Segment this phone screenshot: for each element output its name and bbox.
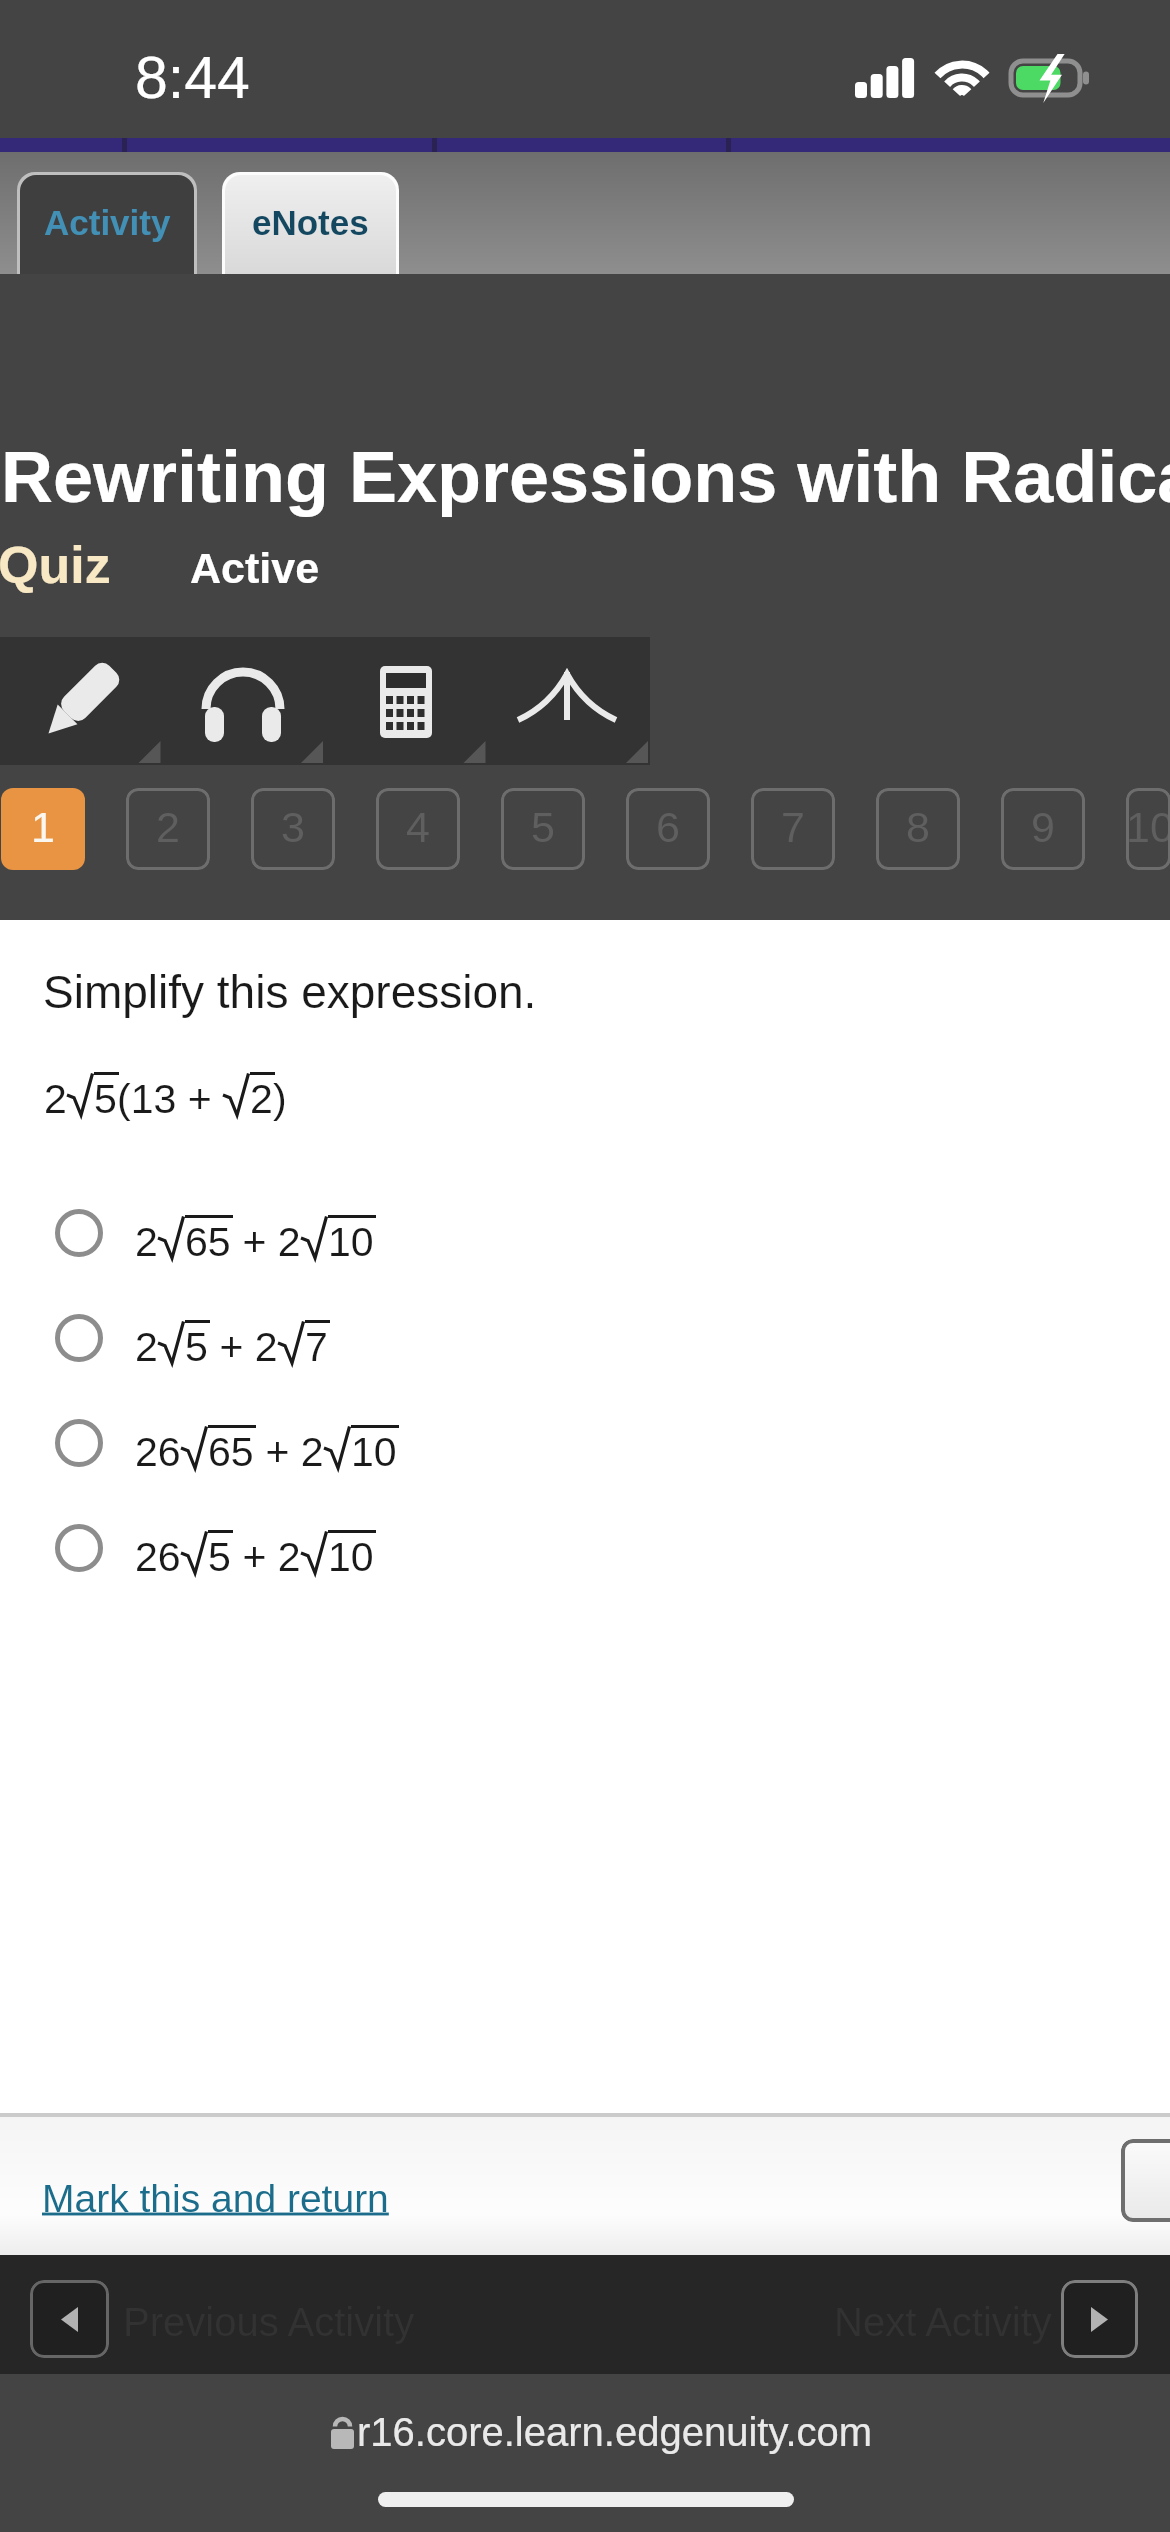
button[interactable]: 6	[626, 788, 710, 870]
staticText: Rewriting Expressions with Radicals	[1, 437, 1170, 517]
button[interactable]: Next Activity	[825, 2280, 1139, 2358]
staticText: Active	[190, 544, 320, 592]
button[interactable]: Previous Activity	[30, 2280, 420, 2358]
staticText: 1	[31, 803, 55, 851]
staticText: 5	[185, 1324, 208, 1370]
button[interactable]: Highlighter	[0, 637, 162, 765]
staticText: 2	[156, 803, 180, 851]
staticText: 8:44	[135, 45, 250, 111]
staticText: Activity	[44, 203, 171, 242]
button[interactable]: Read aloud	[162, 637, 324, 765]
staticText: eNotes	[252, 203, 369, 242]
button[interactable]: 5	[501, 788, 585, 870]
staticText: Simplify this expression.	[43, 966, 537, 1017]
button[interactable]: Reference	[486, 637, 648, 765]
staticText: 3	[281, 803, 305, 851]
staticText: + 2	[208, 1324, 278, 1370]
button[interactable]: 26	[0, 1495, 1170, 1600]
staticText: + 2	[231, 1534, 301, 1580]
button[interactable]: Mark this and return	[42, 2177, 389, 2221]
staticText: 2	[250, 1076, 273, 1122]
button[interactable]: 8	[876, 788, 960, 870]
button[interactable]: 9	[1001, 788, 1085, 870]
button[interactable]: Activity	[20, 175, 194, 274]
staticText: r16.core.learn.edgenuity.com	[357, 2410, 873, 2455]
button[interactable]: 2	[126, 788, 210, 870]
button[interactable]: 2	[0, 1285, 1170, 1390]
staticText: (13 +	[117, 1076, 223, 1122]
staticText: 65	[185, 1219, 231, 1265]
staticText: 5	[208, 1534, 231, 1580]
staticText: 2	[44, 1076, 67, 1122]
button[interactable]: 10	[1126, 788, 1170, 870]
staticText: 7	[781, 803, 805, 851]
staticText: 5	[531, 803, 555, 851]
staticText: 26	[135, 1534, 181, 1580]
staticText: 10	[351, 1429, 397, 1475]
staticText: 9	[1031, 803, 1055, 851]
staticText: + 2	[254, 1429, 324, 1475]
staticText: 5	[94, 1076, 117, 1122]
staticText: 8	[906, 803, 930, 851]
button[interactable]: 3	[251, 788, 335, 870]
staticText: 6	[656, 803, 680, 851]
staticText: Previous Activity	[123, 2300, 415, 2345]
staticText: 10	[328, 1219, 374, 1265]
button[interactable]: 7	[751, 788, 835, 870]
staticText: + 2	[231, 1219, 301, 1265]
staticText: Quiz	[0, 536, 111, 594]
button[interactable]: Calculator	[324, 637, 486, 765]
staticText: 4	[406, 803, 430, 851]
staticText: 26	[135, 1429, 181, 1475]
staticText: 2	[135, 1324, 158, 1370]
staticText: )	[273, 1076, 287, 1122]
staticText: 2	[135, 1219, 158, 1265]
staticText: 10	[328, 1534, 374, 1580]
staticText: 65	[208, 1429, 254, 1475]
staticText: 10	[1126, 803, 1170, 851]
staticText: 7	[305, 1324, 328, 1370]
button[interactable]: Submit	[1121, 2139, 1170, 2222]
button[interactable]: eNotes	[225, 175, 396, 274]
button[interactable]: 2	[0, 1180, 1170, 1285]
button[interactable]: 4	[376, 788, 460, 870]
button[interactable]: 1	[1, 788, 85, 870]
button[interactable]: 26	[0, 1390, 1170, 1495]
staticText: Next Activity	[834, 2300, 1052, 2345]
